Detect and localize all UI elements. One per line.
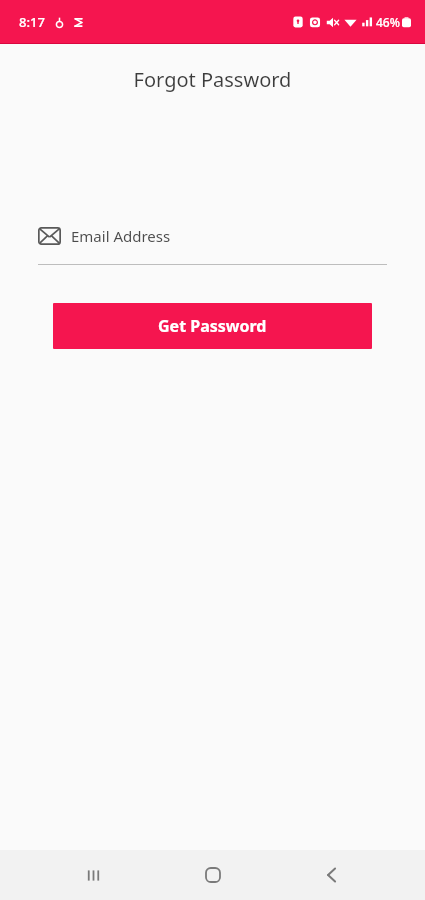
button[interactable]: Recent apps — [66, 850, 120, 900]
staticText: Forgot Password — [0, 66, 425, 93]
staticText: Get Password — [158, 315, 267, 337]
staticText: Email Address — [71, 226, 171, 246]
button[interactable]: Email Address — [38, 221, 387, 265]
staticText: 8:17 — [19, 13, 45, 31]
button[interactable]: Back — [305, 850, 359, 900]
button[interactable]: Get Password — [53, 303, 372, 349]
button[interactable]: Home — [186, 850, 240, 900]
staticText: 46% — [376, 14, 400, 30]
